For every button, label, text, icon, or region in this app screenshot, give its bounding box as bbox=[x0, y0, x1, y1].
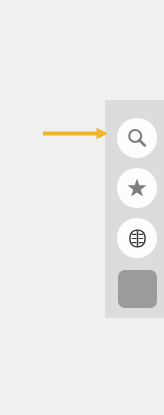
button[interactable]: Search bbox=[117, 118, 157, 158]
button[interactable]: Favorites bbox=[117, 168, 157, 208]
other: Pointer arrow bbox=[42, 126, 108, 141]
button[interactable]: Dictionary bbox=[117, 218, 157, 258]
button[interactable]: More options bbox=[118, 270, 157, 308]
